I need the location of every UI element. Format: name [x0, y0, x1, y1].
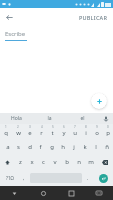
button[interactable]: 3: [24, 124, 36, 139]
button[interactable]: .: [83, 170, 93, 186]
staticText: a: [6, 143, 10, 151]
button[interactable]: v: [49, 154, 61, 170]
staticText: 0: [107, 125, 109, 129]
button[interactable]: Voice input: [99, 113, 113, 124]
button[interactable]: s: [13, 139, 24, 154]
button[interactable]: PUBLICAR: [76, 12, 111, 23]
staticText: f: [39, 143, 42, 151]
staticText: 5: [52, 125, 54, 129]
staticText: i: [85, 129, 87, 137]
staticText: v: [53, 158, 57, 166]
button[interactable]: k: [79, 139, 90, 154]
button[interactable]: b: [61, 154, 73, 170]
staticText: el: [80, 115, 85, 122]
staticText: e: [28, 129, 32, 137]
button[interactable]: 8: [80, 124, 91, 139]
staticText: d: [28, 143, 32, 151]
button[interactable]: el: [66, 113, 99, 124]
staticText: k: [83, 143, 87, 151]
staticText: b: [65, 158, 69, 166]
button[interactable]: Switch keyboard: [85, 186, 113, 200]
button[interactable]: Backspace: [97, 154, 113, 170]
button[interactable]: h: [57, 139, 68, 154]
button[interactable]: a: [2, 139, 13, 154]
button[interactable]: 7: [69, 124, 80, 139]
staticText: l: [95, 143, 97, 151]
staticText: z: [19, 158, 22, 166]
staticText: 8: [85, 125, 87, 129]
staticText: t: [51, 129, 54, 137]
button[interactable]: Hola: [0, 113, 33, 124]
button[interactable]: ?1Ω: [0, 170, 19, 186]
staticText: 9: [96, 125, 98, 129]
button[interactable]: n: [73, 154, 85, 170]
button[interactable]: m: [85, 154, 97, 170]
staticText: 2: [17, 125, 19, 129]
button[interactable]: g: [46, 139, 57, 154]
staticText: PUBLICAR: [79, 14, 108, 21]
button[interactable]: 9: [91, 124, 102, 139]
button[interactable]: Shift: [0, 154, 15, 170]
staticText: la: [47, 115, 52, 122]
button[interactable]: 0: [102, 124, 113, 139]
button[interactable]: la: [33, 113, 66, 124]
staticText: g: [50, 143, 54, 151]
staticText: q: [4, 129, 8, 137]
button[interactable]: x: [26, 154, 37, 170]
staticText: o: [95, 129, 99, 137]
button[interactable]: ,: [19, 170, 29, 186]
button[interactable]: z: [15, 154, 26, 170]
button[interactable]: Back: [0, 186, 29, 200]
button[interactable]: f: [35, 139, 46, 154]
staticText: Hola: [11, 115, 22, 122]
button[interactable]: Back: [3, 11, 16, 24]
staticText: y: [62, 129, 66, 137]
staticText: x: [30, 158, 34, 166]
staticText: 1: [5, 125, 7, 129]
button[interactable]: ñ: [101, 139, 112, 154]
staticText: j: [73, 143, 75, 151]
staticText: ?1Ω: [6, 175, 14, 181]
button[interactable]: 6: [58, 124, 69, 139]
staticText: m: [88, 158, 94, 166]
button[interactable]: Home: [29, 186, 57, 200]
button[interactable]: c: [37, 154, 49, 170]
staticText: 4: [41, 125, 43, 129]
staticText: 3: [29, 125, 31, 129]
staticText: w: [16, 129, 21, 137]
button[interactable]: 2: [12, 124, 24, 139]
staticText: r: [40, 129, 43, 137]
button[interactable]: j: [68, 139, 79, 154]
staticText: s: [17, 143, 20, 151]
staticText: 6: [63, 125, 65, 129]
staticText: c: [42, 158, 45, 166]
staticText: .: [87, 175, 89, 182]
button[interactable]: 5: [47, 124, 58, 139]
button[interactable]: Enter: [99, 174, 108, 183]
staticText: u: [73, 129, 77, 137]
button[interactable]: Add: [91, 93, 107, 109]
staticText: p: [106, 129, 110, 137]
button[interactable]: d: [24, 139, 35, 154]
staticText: ,: [23, 175, 25, 182]
staticText: ñ: [105, 143, 109, 151]
staticText: 7: [74, 125, 76, 129]
button[interactable]: l: [90, 139, 101, 154]
button[interactable]: 4: [36, 124, 47, 139]
staticText: n: [77, 158, 81, 166]
button[interactable]: 1: [0, 124, 12, 139]
button[interactable]: Recent apps: [57, 186, 85, 200]
staticText: h: [61, 143, 65, 151]
staticText: Escribe: [5, 30, 26, 38]
